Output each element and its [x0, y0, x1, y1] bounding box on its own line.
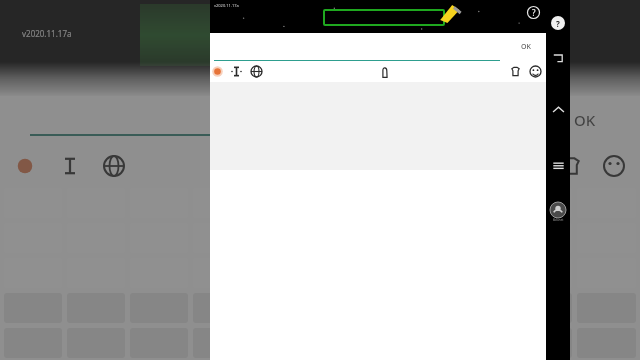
button[interactable]: Menu — [552, 159, 565, 172]
staticText: OK — [521, 42, 531, 52]
button[interactable]: Profile — [550, 202, 566, 218]
staticText: ? — [532, 7, 536, 18]
button[interactable] — [323, 9, 445, 26]
button[interactable]: Theme — [509, 65, 522, 78]
button[interactable]: Emoji — [529, 65, 542, 78]
staticText: kkk.net — [553, 218, 564, 222]
staticText: v2020.11.17a — [214, 3, 239, 8]
staticText: ? — [556, 18, 560, 29]
button[interactable]: Language — [250, 65, 263, 78]
button[interactable]: Handwriting — [379, 65, 392, 78]
button[interactable]: Voice — [212, 66, 223, 77]
button[interactable]: Help — [527, 6, 540, 19]
staticText: v2020.11.17a — [22, 28, 72, 39]
button[interactable]: Back — [552, 52, 564, 64]
other: Pencil cursor — [439, 3, 463, 23]
button[interactable]: Home — [552, 104, 565, 117]
button[interactable]: Help — [551, 16, 565, 30]
button[interactable]: Text cursor — [230, 65, 243, 78]
button[interactable]: OK — [506, 33, 546, 61]
staticText: OK — [574, 110, 596, 130]
button[interactable] — [214, 35, 500, 61]
